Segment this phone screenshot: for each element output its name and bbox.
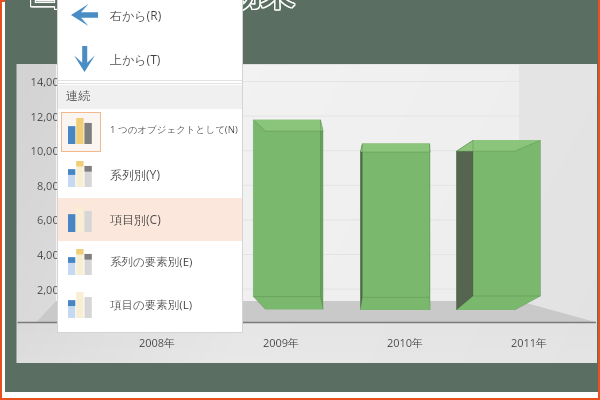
staticText: 画面切り替え効果 [27, 0, 293, 14]
staticText: 項目の要素別(L) [110, 297, 193, 313]
staticText: 1 つのオブジェクトとして(N) [110, 123, 238, 136]
button[interactable]: 項目の要素別(L) [58, 284, 242, 327]
staticText: 6,000 [20, 212, 65, 227]
staticText: 画面切り替え効果 [28, 0, 294, 14]
button[interactable]: 系列の要素別(E) [58, 241, 242, 284]
staticText: 連続 [66, 88, 90, 103]
staticText: 系列の要素別(E) [110, 254, 193, 270]
staticText: 2009年 [251, 335, 311, 350]
staticText: 右から(R) [110, 7, 162, 23]
button[interactable]: From top [58, 37, 242, 81]
staticText: 画面切り替え効果 [27, 0, 293, 15]
staticText: 2,000 [20, 282, 65, 297]
staticText: 2010年 [375, 335, 435, 350]
staticText: 画面切り替え効果 [28, 0, 294, 16]
staticText: 上から(T) [110, 51, 161, 67]
button[interactable]: 系列別(Y) [58, 153, 242, 196]
button[interactable]: 項目別(C) [58, 198, 242, 241]
staticText: 12,000 [20, 109, 65, 124]
staticText: 系列別(Y) [110, 166, 160, 182]
staticText: 8,000 [20, 178, 65, 193]
staticText: 画面切り替え効果 [29, 0, 295, 16]
other: From top [58, 37, 110, 81]
staticText: 14,000 [20, 74, 65, 89]
staticText: 画面切り替え効果 [27, 0, 293, 16]
staticText: 2008年 [127, 335, 187, 350]
staticText: 画面切り替え効果 [29, 0, 295, 15]
staticText: 2011年 [499, 335, 559, 350]
staticText: 項目別(C) [110, 211, 161, 227]
staticText: 画面切り替え効果 [29, 0, 295, 14]
button[interactable]: 1 つのオブジェクトとして(N) [58, 110, 242, 153]
other: From right [58, 0, 110, 37]
staticText: 4,000 [20, 247, 65, 262]
staticText: 10,000 [20, 143, 65, 158]
button[interactable]: From right [58, 0, 242, 37]
staticText: 画面切り替え効果 [28, 0, 294, 15]
